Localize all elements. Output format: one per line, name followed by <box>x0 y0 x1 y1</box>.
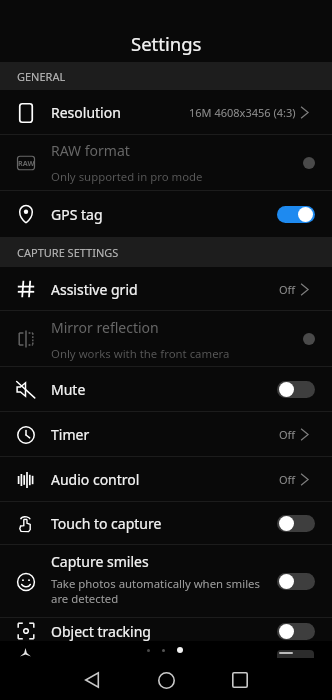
button[interactable] <box>277 623 315 640</box>
staticText: GPS tag <box>51 205 103 224</box>
staticText: RAW format <box>51 141 130 160</box>
staticText: Object tracking <box>51 622 151 641</box>
button[interactable] <box>277 515 315 532</box>
button[interactable]: Home <box>145 660 187 700</box>
button[interactable]: Recents <box>219 660 261 700</box>
button[interactable]: Assistive grid <box>0 267 332 311</box>
staticText: Mirror reflection <box>51 318 159 337</box>
button[interactable]: Capture smiles <box>0 545 332 618</box>
button[interactable] <box>277 573 315 590</box>
button[interactable]: Timer <box>0 412 332 457</box>
button[interactable]: RAW <box>0 135 332 191</box>
button[interactable]: Touch to capture <box>0 502 332 545</box>
button[interactable]: Back <box>71 660 113 700</box>
staticText: Off <box>279 282 296 297</box>
button[interactable]: Mirror reflection <box>0 311 332 367</box>
button[interactable]: GPS tag <box>0 191 332 237</box>
staticText: Resolution <box>51 103 121 122</box>
staticText: Only supported in pro mode <box>51 169 203 185</box>
button[interactable]: Mute <box>0 367 332 412</box>
staticText: Off <box>279 427 296 442</box>
staticText: CAPTURE SETTINGS <box>17 245 119 260</box>
button[interactable]: Object tracking <box>0 618 332 660</box>
button[interactable] <box>277 206 315 223</box>
button[interactable] <box>277 381 315 398</box>
staticText: RAW <box>18 158 35 168</box>
button[interactable]: Resolution <box>0 90 332 135</box>
staticText: GENERAL <box>17 69 66 84</box>
staticText: Touch to capture <box>51 514 162 533</box>
staticText: Capture smiles <box>51 552 149 571</box>
staticText: 16M 4608x3456 (4:3) <box>189 105 296 120</box>
staticText: Take photos automatically when smiles ar… <box>51 576 267 606</box>
staticText: Only works with the front camera <box>51 346 230 362</box>
staticText: Mute <box>51 380 86 399</box>
staticText: Timer <box>51 425 90 444</box>
staticText: Audio control <box>51 470 140 489</box>
staticText: Settings <box>131 31 202 56</box>
staticText: Off <box>279 472 296 487</box>
staticText: Assistive grid <box>51 280 138 299</box>
button[interactable]: Audio control <box>0 457 332 502</box>
